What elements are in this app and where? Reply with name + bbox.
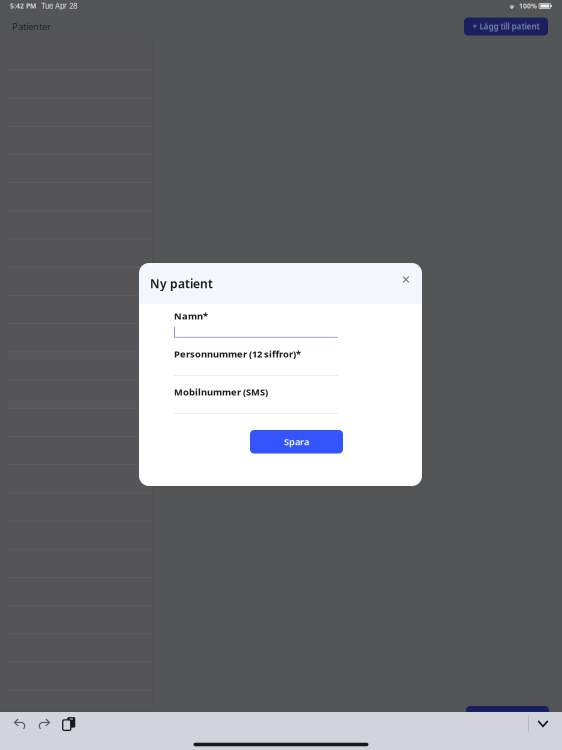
staticText: + Lägg till patient (472, 21, 539, 32)
button[interactable]: Undo (8, 713, 32, 735)
staticText: Spara (284, 436, 309, 448)
staticText: Namn* (174, 310, 208, 322)
button[interactable]: Add patient (466, 706, 549, 724)
staticText: Ny patient (150, 275, 213, 291)
staticText: Patienter (12, 20, 51, 33)
staticText: Mobilnummer (SMS) (174, 386, 268, 398)
button[interactable]: Hide keyboard (529, 713, 557, 735)
button[interactable]: + Lägg till patient (464, 17, 548, 35)
staticText: Personnummer (12 siffror)* (174, 348, 301, 360)
button[interactable]: Redo (32, 713, 56, 735)
button[interactable]: Paste (57, 713, 81, 735)
button[interactable]: Spara (250, 430, 343, 453)
staticText: 5:42 PM (10, 2, 36, 10)
staticText: Tue Apr 28 (41, 2, 78, 10)
staticText: 100% (519, 2, 537, 10)
button[interactable]: Close (396, 269, 416, 289)
